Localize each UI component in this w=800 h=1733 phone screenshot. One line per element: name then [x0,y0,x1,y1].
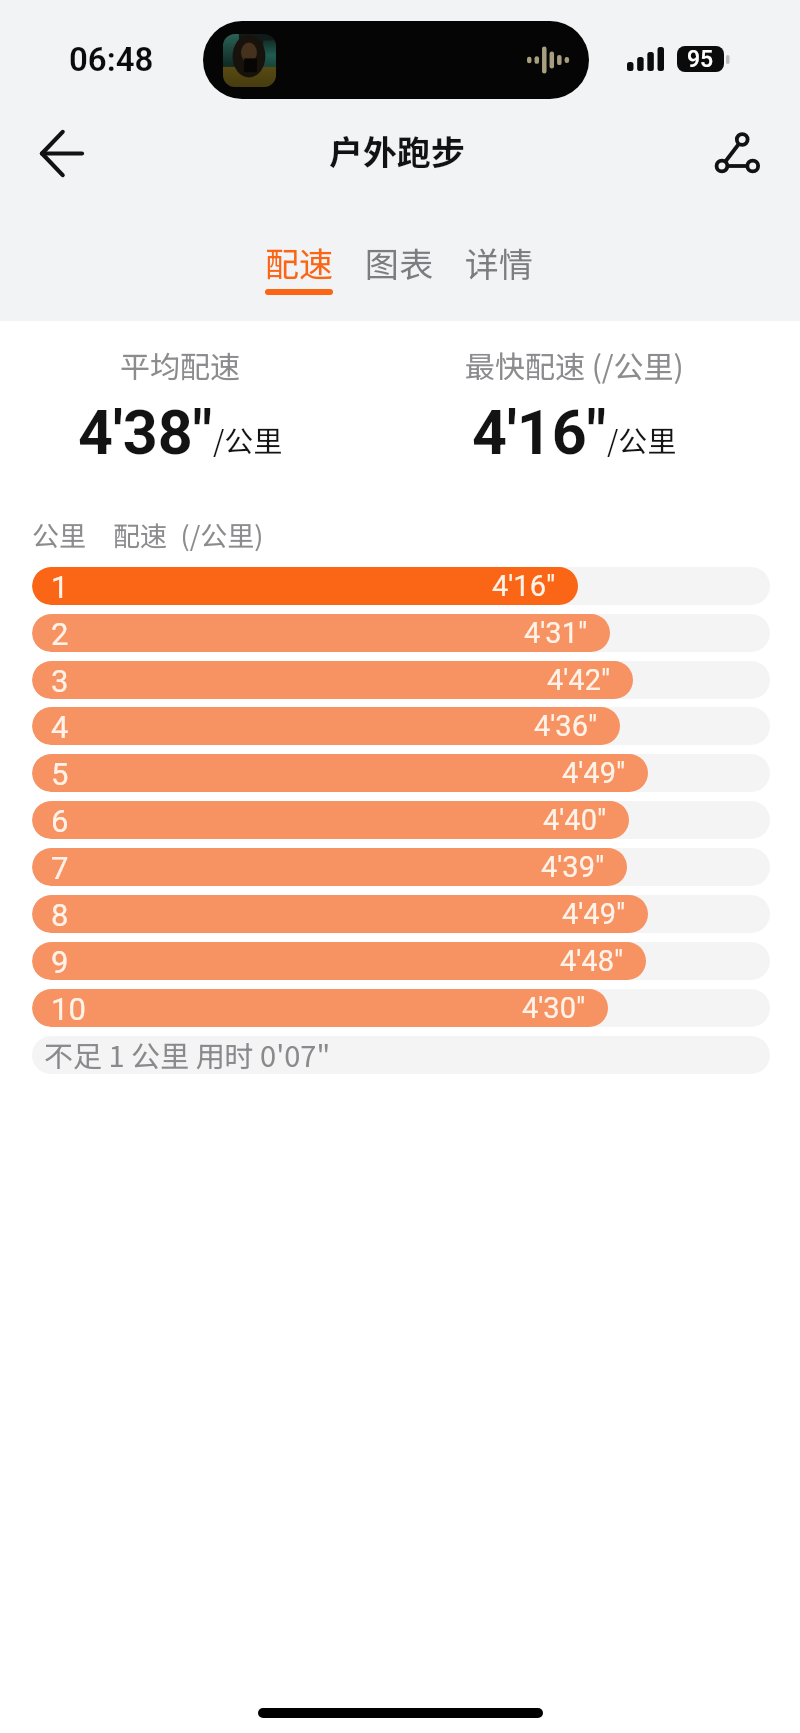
staticText: 4'16" [492,569,556,603]
staticText: 4'36" [534,709,598,743]
staticText: 不足 1 公里 用时 0'07" [44,1036,331,1071]
button[interactable]: Back [24,115,100,191]
button[interactable]: 9 [32,942,770,980]
staticText: 2 [51,616,69,652]
staticText: 4'30" [522,991,586,1025]
button[interactable]: 5 [32,754,770,792]
button[interactable]: 4 [32,707,770,745]
staticText: 9 [51,944,69,980]
staticText: 06:48 [69,40,154,79]
staticText: /公里 [213,418,283,460]
staticText: 图表 [365,238,433,287]
staticText: 5 [51,756,69,792]
staticText: 8 [51,897,69,933]
button[interactable]: 8 [32,895,770,933]
staticText: 详情 [465,238,533,287]
staticText: 1 [51,569,69,605]
staticText: 4'49" [562,897,626,931]
button[interactable]: 6 [32,801,770,839]
staticText: 平均配速 [120,343,240,386]
button[interactable]: 10 [32,989,770,1027]
button[interactable]: 图表 [351,238,447,296]
staticText: 4 [51,709,69,745]
staticText: 10 [51,991,86,1027]
staticText: 4'38" [78,397,213,468]
staticText: /公里 [607,418,677,460]
button[interactable]: Share [698,115,774,191]
staticText: 4'31" [524,616,588,650]
staticText: 4'39" [541,850,605,884]
staticText: 公里 配速 (/公里) [32,515,264,554]
staticText: 4'40" [543,803,607,837]
button[interactable]: 2 [32,614,770,652]
button[interactable]: 7 [32,848,770,886]
button[interactable]: 3 [32,661,770,699]
staticText: 4'16" [472,397,607,468]
staticText: 4'42" [547,663,611,697]
button[interactable]: 详情 [451,238,547,296]
staticText: 4'48" [560,944,624,978]
staticText: 95 [687,46,714,72]
button[interactable]: 1 [32,567,770,605]
staticText: 3 [51,663,69,699]
button[interactable]: 配速 [251,238,347,296]
staticText: 最快配速 (/公里) [465,343,684,386]
staticText: 4'49" [562,756,626,790]
staticText: 7 [51,850,69,886]
staticText: 6 [51,803,69,839]
staticText: 户外跑步 [329,126,465,175]
staticText: 配速 [265,238,333,287]
